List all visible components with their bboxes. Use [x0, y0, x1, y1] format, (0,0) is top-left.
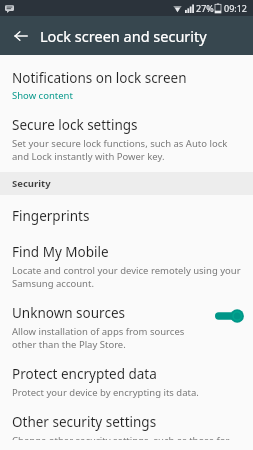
button[interactable]: Unknown sources toggle, on [215, 308, 245, 324]
staticText: Other security settings [12, 413, 157, 431]
staticText: Unknown sources [12, 304, 125, 322]
button[interactable]: Protect encrypted data [0, 361, 253, 409]
button[interactable]: Navigate up [8, 23, 34, 49]
staticText: Locate and control your device remotely … [12, 264, 241, 290]
staticText: Allow installation of apps from sources … [12, 325, 209, 351]
button[interactable]: Secure lock settings [0, 112, 253, 172]
staticText: Protect encrypted data [12, 365, 157, 383]
staticText: 09:12 [224, 2, 248, 14]
staticText: 27% [196, 2, 214, 14]
staticText: Lock screen and security [40, 26, 207, 46]
button[interactable]: Find My Mobile [0, 239, 253, 300]
button[interactable]: Fingerprints [0, 195, 253, 239]
button[interactable]: Unknown sources [0, 300, 253, 361]
staticText: Secure lock settings [12, 116, 138, 134]
staticText: Change other security settings, such as … [12, 434, 241, 440]
staticText: Protect your device by encrypting its da… [12, 386, 199, 399]
staticText: Fingerprints [12, 207, 90, 225]
staticText: Find My Mobile [12, 243, 109, 261]
button[interactable]: Notifications on lock screen [0, 65, 253, 112]
staticText: Security [12, 177, 51, 190]
staticText: Notifications on lock screen [12, 69, 187, 87]
button[interactable]: Other security settings [0, 409, 253, 450]
staticText: Show content [12, 89, 73, 102]
staticText: Set your secure lock functions, such as … [12, 137, 241, 163]
